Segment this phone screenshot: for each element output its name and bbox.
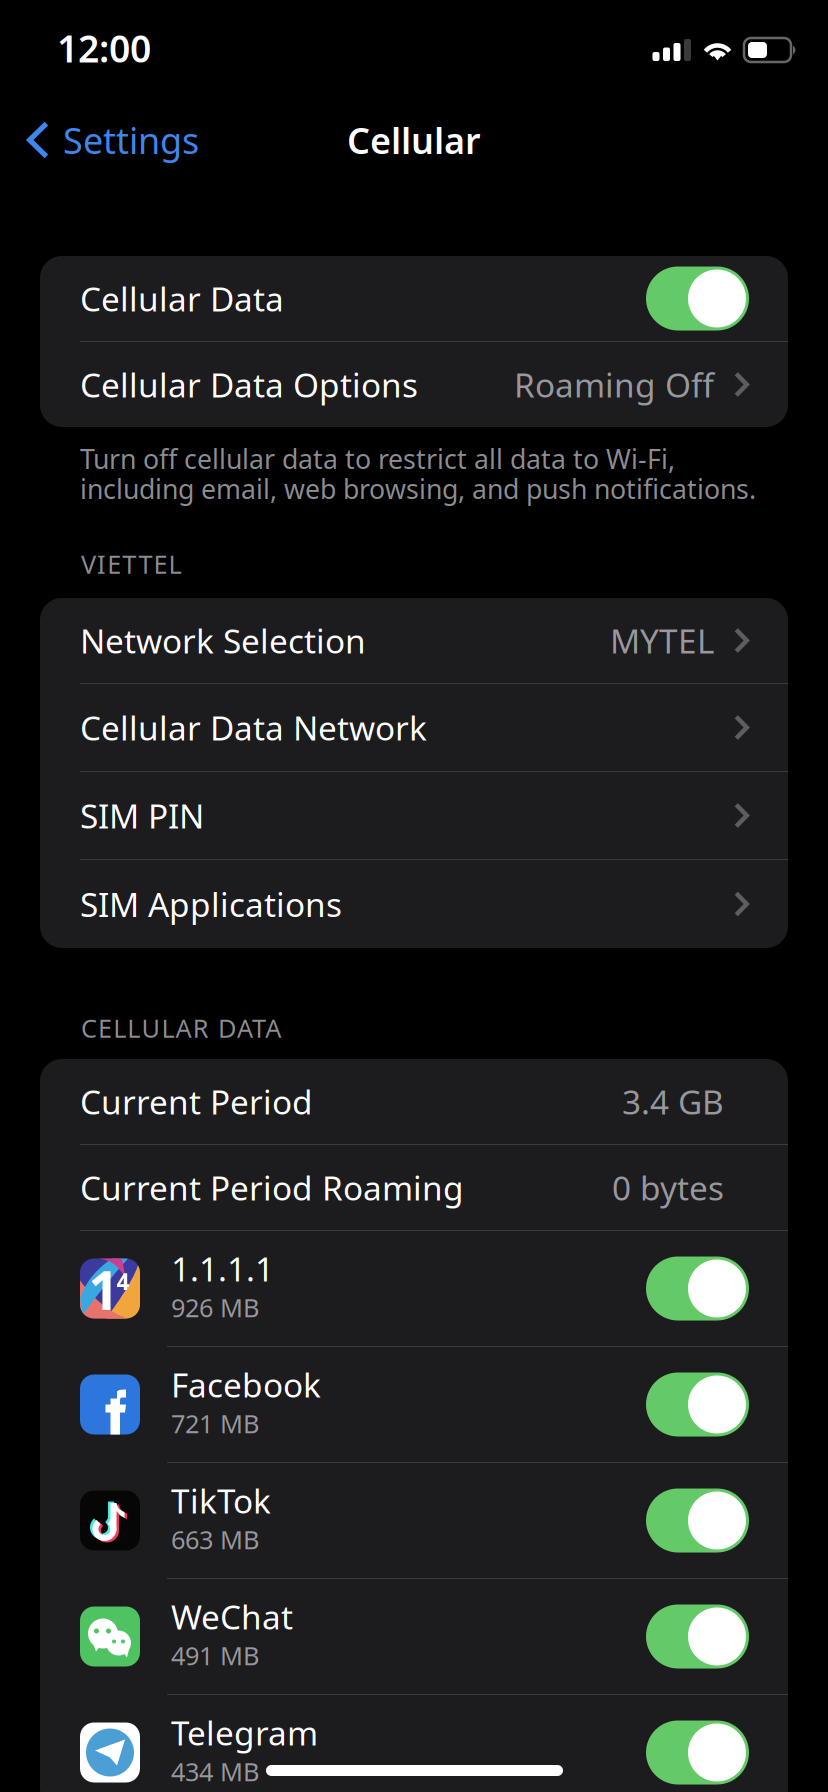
staticText: Current Period: [80, 1079, 313, 1124]
staticText: Cellular Data Network: [80, 705, 427, 750]
staticText: Roaming Off: [514, 362, 714, 407]
staticText: 12:00: [57, 23, 151, 73]
staticText: 1: [88, 1254, 119, 1325]
staticText: SIM Applications: [80, 882, 342, 926]
button[interactable]: TikTok: [40, 1463, 788, 1578]
button[interactable]: SIM PIN: [40, 772, 788, 859]
staticText: WeChat: [171, 1594, 293, 1639]
staticText: 721 MB: [171, 1406, 259, 1440]
staticText: 0 bytes: [612, 1165, 724, 1210]
staticText: 1.1.1.1: [171, 1246, 274, 1291]
button[interactable]: Current Period Roaming: [40, 1145, 788, 1230]
staticText: Current Period Roaming: [80, 1165, 464, 1210]
staticText: Telegram: [171, 1710, 318, 1755]
button[interactable]: Telegram: [40, 1695, 788, 1792]
staticText: Cellular: [347, 116, 481, 164]
button[interactable]: Facebook: [40, 1347, 788, 1462]
staticText: 434 MB: [171, 1754, 259, 1788]
staticText: Settings: [63, 116, 199, 164]
button[interactable]: Current Period: [40, 1059, 788, 1144]
staticText: TikTok: [171, 1478, 271, 1523]
staticText: Turn off cellular data to restrict all d…: [80, 441, 675, 476]
staticText: Cellular Data Options: [80, 362, 418, 407]
staticText: 4: [116, 1266, 129, 1296]
staticText: CELLULAR DATA: [81, 1011, 281, 1045]
staticText: 3.4 GB: [622, 1079, 724, 1124]
staticText: including email, web browsing, and push …: [80, 471, 756, 506]
staticText: 663 MB: [171, 1522, 259, 1556]
staticText: 491 MB: [171, 1638, 259, 1672]
button[interactable]: 1: [40, 1231, 788, 1346]
staticText: SIM PIN: [80, 793, 204, 838]
button[interactable]: Settings: [0, 107, 215, 173]
button[interactable]: 1.1.1.1 cellular data: [646, 1256, 749, 1320]
button[interactable]: SIM Applications: [40, 860, 788, 948]
button[interactable]: Cellular Data Options: [40, 342, 788, 427]
staticText: Network Selection: [80, 618, 366, 663]
staticText: 926 MB: [171, 1290, 259, 1324]
button[interactable]: TikTok cellular data: [646, 1488, 749, 1552]
staticText: MYTEL: [610, 618, 714, 663]
staticText: Facebook: [171, 1362, 321, 1407]
button[interactable]: Cellular Data Network: [40, 684, 788, 771]
button[interactable]: Telegram cellular data: [646, 1720, 749, 1784]
button[interactable]: Cellular Data: [646, 266, 749, 330]
button[interactable]: WeChat cellular data: [646, 1604, 749, 1668]
staticText: Cellular Data: [80, 276, 284, 321]
staticText: VIETTEL: [81, 547, 182, 581]
button[interactable]: WeChat: [40, 1579, 788, 1694]
button[interactable]: Facebook cellular data: [646, 1372, 749, 1436]
button[interactable]: Network Selection: [40, 598, 788, 683]
button[interactable]: Cellular Data: [40, 256, 788, 341]
